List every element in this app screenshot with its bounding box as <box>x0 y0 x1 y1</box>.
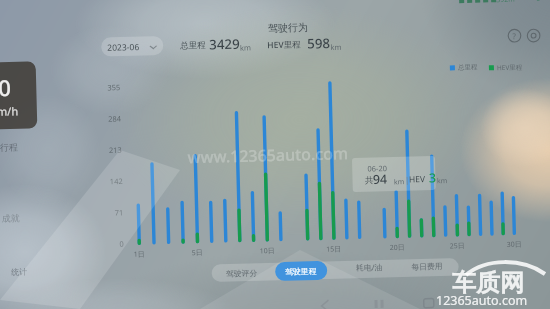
button[interactable] <box>0 0 550 309</box>
